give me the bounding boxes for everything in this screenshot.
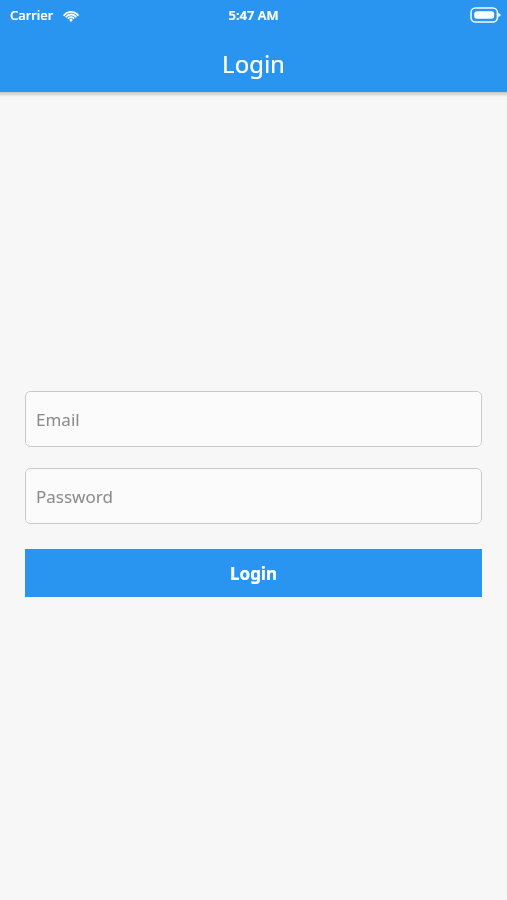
- staticText: Login: [0, 47, 507, 80]
- staticText: Password: [36, 485, 113, 508]
- button[interactable]: Password: [25, 468, 482, 524]
- button[interactable]: Login: [25, 549, 482, 597]
- staticText: Login: [230, 562, 278, 585]
- staticText: Carrier: [10, 6, 54, 24]
- button[interactable]: Email: [25, 391, 482, 447]
- staticText: 5:47 AM: [0, 6, 507, 24]
- staticText: Email: [36, 408, 80, 431]
